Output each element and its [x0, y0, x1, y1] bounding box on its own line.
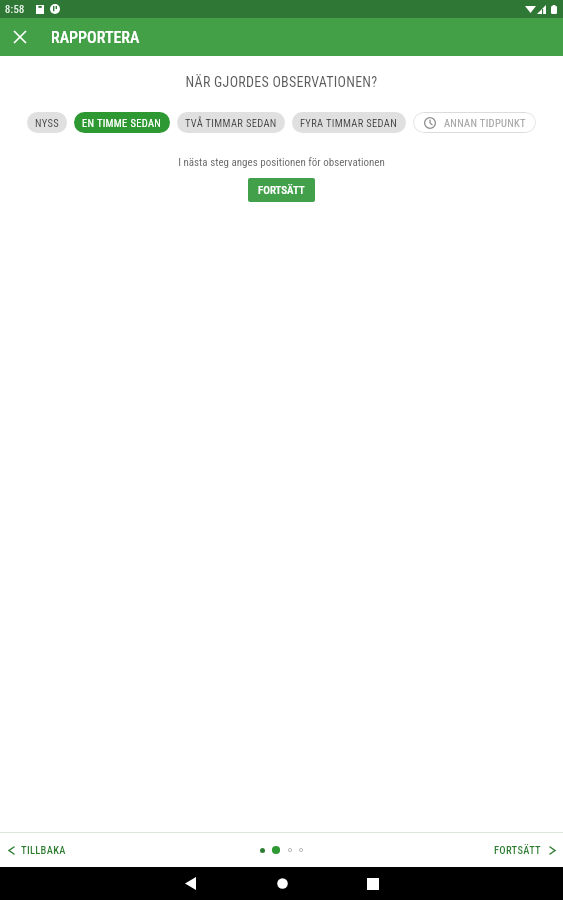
- staticText: ANNAN TIDPUNKT: [444, 117, 526, 129]
- staticText: TVÅ TIMMAR SEDAN: [185, 117, 277, 129]
- button[interactable]: EN TIMME SEDAN: [74, 112, 170, 133]
- staticText: RAPPORTERA: [51, 28, 140, 47]
- staticText: I nästa steg anges positionen för observ…: [0, 156, 563, 169]
- button[interactable]: FORTSÄTT: [248, 178, 315, 202]
- button[interactable]: NYSS: [27, 112, 67, 133]
- staticText: EN TIMME SEDAN: [82, 117, 162, 129]
- button[interactable]: Home: [260, 867, 304, 900]
- staticText: TILLBAKA: [21, 844, 66, 856]
- button[interactable]: Recents: [351, 867, 395, 900]
- button[interactable]: TVÅ TIMMAR SEDAN: [177, 112, 285, 133]
- button[interactable]: FORTSÄTT: [303, 833, 563, 867]
- staticText: FYRA TIMMAR SEDAN: [300, 117, 398, 129]
- staticText: FORTSÄTT: [494, 844, 542, 856]
- button[interactable]: Back: [169, 867, 213, 900]
- staticText: NYSS: [35, 117, 59, 129]
- staticText: NÄR GJORDES OBSERVATIONEN?: [0, 74, 563, 90]
- button[interactable]: Stäng: [0, 18, 40, 56]
- staticText: FORTSÄTT: [258, 184, 305, 197]
- button[interactable]: TILLBAKA: [0, 833, 260, 867]
- button[interactable]: FYRA TIMMAR SEDAN: [292, 112, 406, 133]
- staticText: 8:58: [5, 3, 25, 15]
- button[interactable]: ANNAN TIDPUNKT: [413, 112, 536, 133]
